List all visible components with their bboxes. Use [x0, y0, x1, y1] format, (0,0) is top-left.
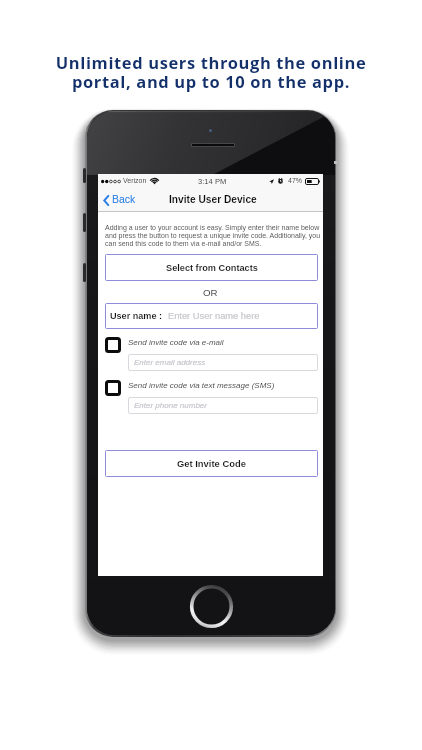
button[interactable]: Send invite code via e-mail [105, 337, 121, 353]
staticText: 3:14 PM [198, 177, 227, 185]
staticText: Adding a user to your account is easy. S… [105, 224, 321, 248]
button[interactable]: Back [98, 190, 142, 210]
staticText: Enter phone number [134, 401, 207, 410]
staticText: Get Invite Code [177, 458, 246, 469]
staticText: Back [112, 194, 136, 206]
button[interactable]: Get Invite Code [105, 450, 318, 477]
staticText: 47% [288, 177, 303, 185]
staticText: Enter email address [134, 358, 206, 367]
staticText: Send invite code via e-mail [128, 338, 224, 347]
button[interactable]: Send invite code via text message (SMS) [105, 380, 121, 396]
staticText: Send invite code via text message (SMS) [128, 381, 275, 390]
button[interactable]: Select from Contacts [105, 254, 318, 281]
button[interactable]: Enter phone number [128, 397, 318, 414]
staticText: Enter User name here [168, 311, 260, 321]
button[interactable]: User name : [105, 303, 318, 329]
staticText: Verizon [123, 177, 147, 185]
button[interactable]: Enter email address [128, 354, 318, 371]
staticText: OR [203, 287, 218, 298]
staticText: Select from Contacts [166, 263, 258, 273]
staticText: Unlimited users through the online porta… [0, 51, 422, 93]
staticText: User name : [110, 311, 163, 321]
staticText: Invite User Device [169, 194, 257, 205]
